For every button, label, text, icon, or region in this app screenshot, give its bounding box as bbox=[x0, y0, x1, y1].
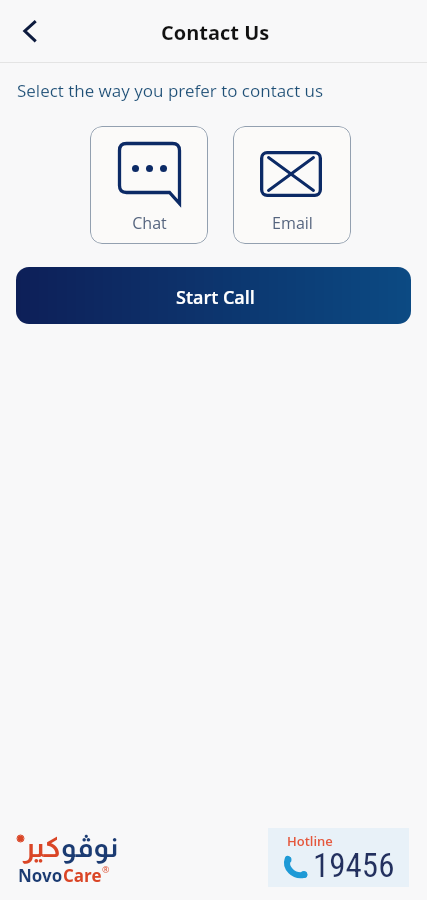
staticText: Contact Us bbox=[161, 19, 270, 46]
staticText: نوڤو bbox=[61, 832, 119, 863]
staticText: ® bbox=[102, 863, 110, 875]
staticText: Start Call bbox=[176, 285, 255, 310]
staticText: Novo bbox=[18, 864, 63, 887]
button[interactable]: Start Call bbox=[16, 267, 411, 324]
staticText: Select the way you prefer to contact us bbox=[17, 79, 324, 102]
button[interactable]: Email bbox=[233, 126, 351, 244]
staticText: Hotline bbox=[287, 832, 333, 850]
staticText: Care bbox=[63, 864, 102, 887]
staticText: كير bbox=[23, 832, 61, 863]
button[interactable]: Back bbox=[7, 8, 53, 54]
staticText: Email bbox=[272, 212, 313, 234]
button[interactable]: Chat bbox=[90, 126, 208, 244]
staticText: 19456 bbox=[313, 846, 395, 885]
button[interactable]: Hotline bbox=[268, 828, 409, 887]
staticText: Chat bbox=[132, 212, 167, 234]
